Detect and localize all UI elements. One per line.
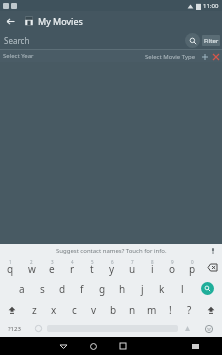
button[interactable]: ? [180, 299, 199, 320]
staticText: 1 [9, 259, 12, 265]
button[interactable]: Comma [29, 320, 47, 337]
button[interactable]: Voice input [208, 246, 217, 255]
button[interactable]: 7 [122, 257, 142, 278]
staticText: r [70, 262, 75, 276]
button[interactable]: Clear [211, 52, 220, 61]
staticText: t [90, 262, 94, 276]
staticText: h [119, 282, 126, 296]
staticText: 6 [111, 259, 114, 265]
button[interactable]: d [52, 278, 72, 299]
button[interactable]: 5 [82, 257, 102, 278]
staticText: Search [4, 35, 30, 46]
staticText: 8 [151, 259, 154, 265]
staticText: x [51, 303, 57, 317]
button[interactable]: Add [200, 52, 209, 61]
staticText: w [28, 262, 36, 276]
staticText: u [129, 262, 136, 276]
button[interactable]: j [132, 278, 152, 299]
staticText: e [49, 262, 55, 276]
staticText: v [91, 303, 97, 317]
staticText: 2 [30, 259, 33, 265]
button[interactable]: v [84, 299, 104, 320]
staticText: a [19, 282, 25, 296]
button[interactable]: Shift right [199, 299, 222, 320]
button[interactable]: Backspace [202, 257, 222, 278]
button[interactable]: 6 [102, 257, 122, 278]
button[interactable]: 3 [42, 257, 62, 278]
staticText: d [59, 282, 66, 296]
button[interactable]: h [112, 278, 132, 299]
staticText: z [32, 303, 37, 317]
button[interactable]: c [64, 299, 84, 320]
button[interactable]: Recents [108, 337, 138, 355]
button[interactable]: 2 [21, 257, 42, 278]
button[interactable]: Shift [0, 299, 24, 320]
button[interactable]: Period [178, 320, 196, 337]
staticText: 11:00 [203, 2, 219, 10]
button[interactable]: Home [78, 337, 108, 355]
button[interactable]: a [11, 278, 32, 299]
staticText: 0 [191, 259, 194, 265]
staticText: l [181, 282, 184, 296]
staticText: p [189, 262, 196, 276]
button[interactable]: ! [161, 299, 180, 320]
staticText: 3 [51, 259, 54, 265]
staticText: j [141, 282, 144, 296]
button[interactable]: Select Year [3, 52, 34, 60]
staticText: m [147, 303, 157, 317]
staticText: 7 [131, 259, 134, 265]
button[interactable]: Emoji [196, 320, 222, 337]
button[interactable]: Suggest contact names? Touch for info. [56, 247, 167, 255]
button[interactable]: n [123, 299, 142, 320]
staticText: f [80, 282, 84, 296]
staticText: My Movies [38, 15, 83, 27]
button[interactable]: l [172, 278, 192, 299]
staticText: i [151, 262, 154, 276]
button[interactable]: Back [48, 337, 78, 355]
button[interactable]: 9 [162, 257, 182, 278]
button[interactable]: s [32, 278, 52, 299]
button[interactable]: x [44, 299, 64, 320]
staticText: o [169, 262, 176, 276]
button[interactable]: 8 [142, 257, 162, 278]
button[interactable]: Search [185, 33, 200, 48]
staticText: 5 [91, 259, 94, 265]
button[interactable]: g [92, 278, 112, 299]
staticText: c [72, 303, 77, 317]
button[interactable]: Filter [202, 35, 220, 46]
staticText: 4 [71, 259, 74, 265]
staticText: g [99, 282, 106, 296]
staticText: q [7, 262, 14, 276]
button[interactable]: 4 [62, 257, 82, 278]
button[interactable]: ?123 [0, 320, 29, 337]
button[interactable]: f [72, 278, 92, 299]
staticText: k [159, 282, 165, 296]
button[interactable]: k [152, 278, 172, 299]
button[interactable]: m [142, 299, 161, 320]
staticText: ! [169, 303, 172, 317]
button[interactable]: z [24, 299, 44, 320]
staticText: 9 [171, 259, 174, 265]
staticText: ? [187, 303, 192, 317]
staticText: Filter [204, 37, 219, 45]
button[interactable]: Select Movie Type [145, 53, 196, 61]
staticText: ?123 [8, 325, 21, 333]
staticText: n [129, 303, 136, 317]
button[interactable]: Back [0, 11, 20, 31]
button[interactable]: 1 [0, 257, 21, 278]
button[interactable]: b [104, 299, 123, 320]
staticText: b [110, 303, 117, 317]
button[interactable]: Keyboard indicator [180, 337, 210, 355]
staticText: y [109, 262, 115, 276]
staticText: s [40, 282, 45, 296]
button[interactable]: 0 [182, 257, 202, 278]
button[interactable]: Search enter [192, 278, 222, 299]
